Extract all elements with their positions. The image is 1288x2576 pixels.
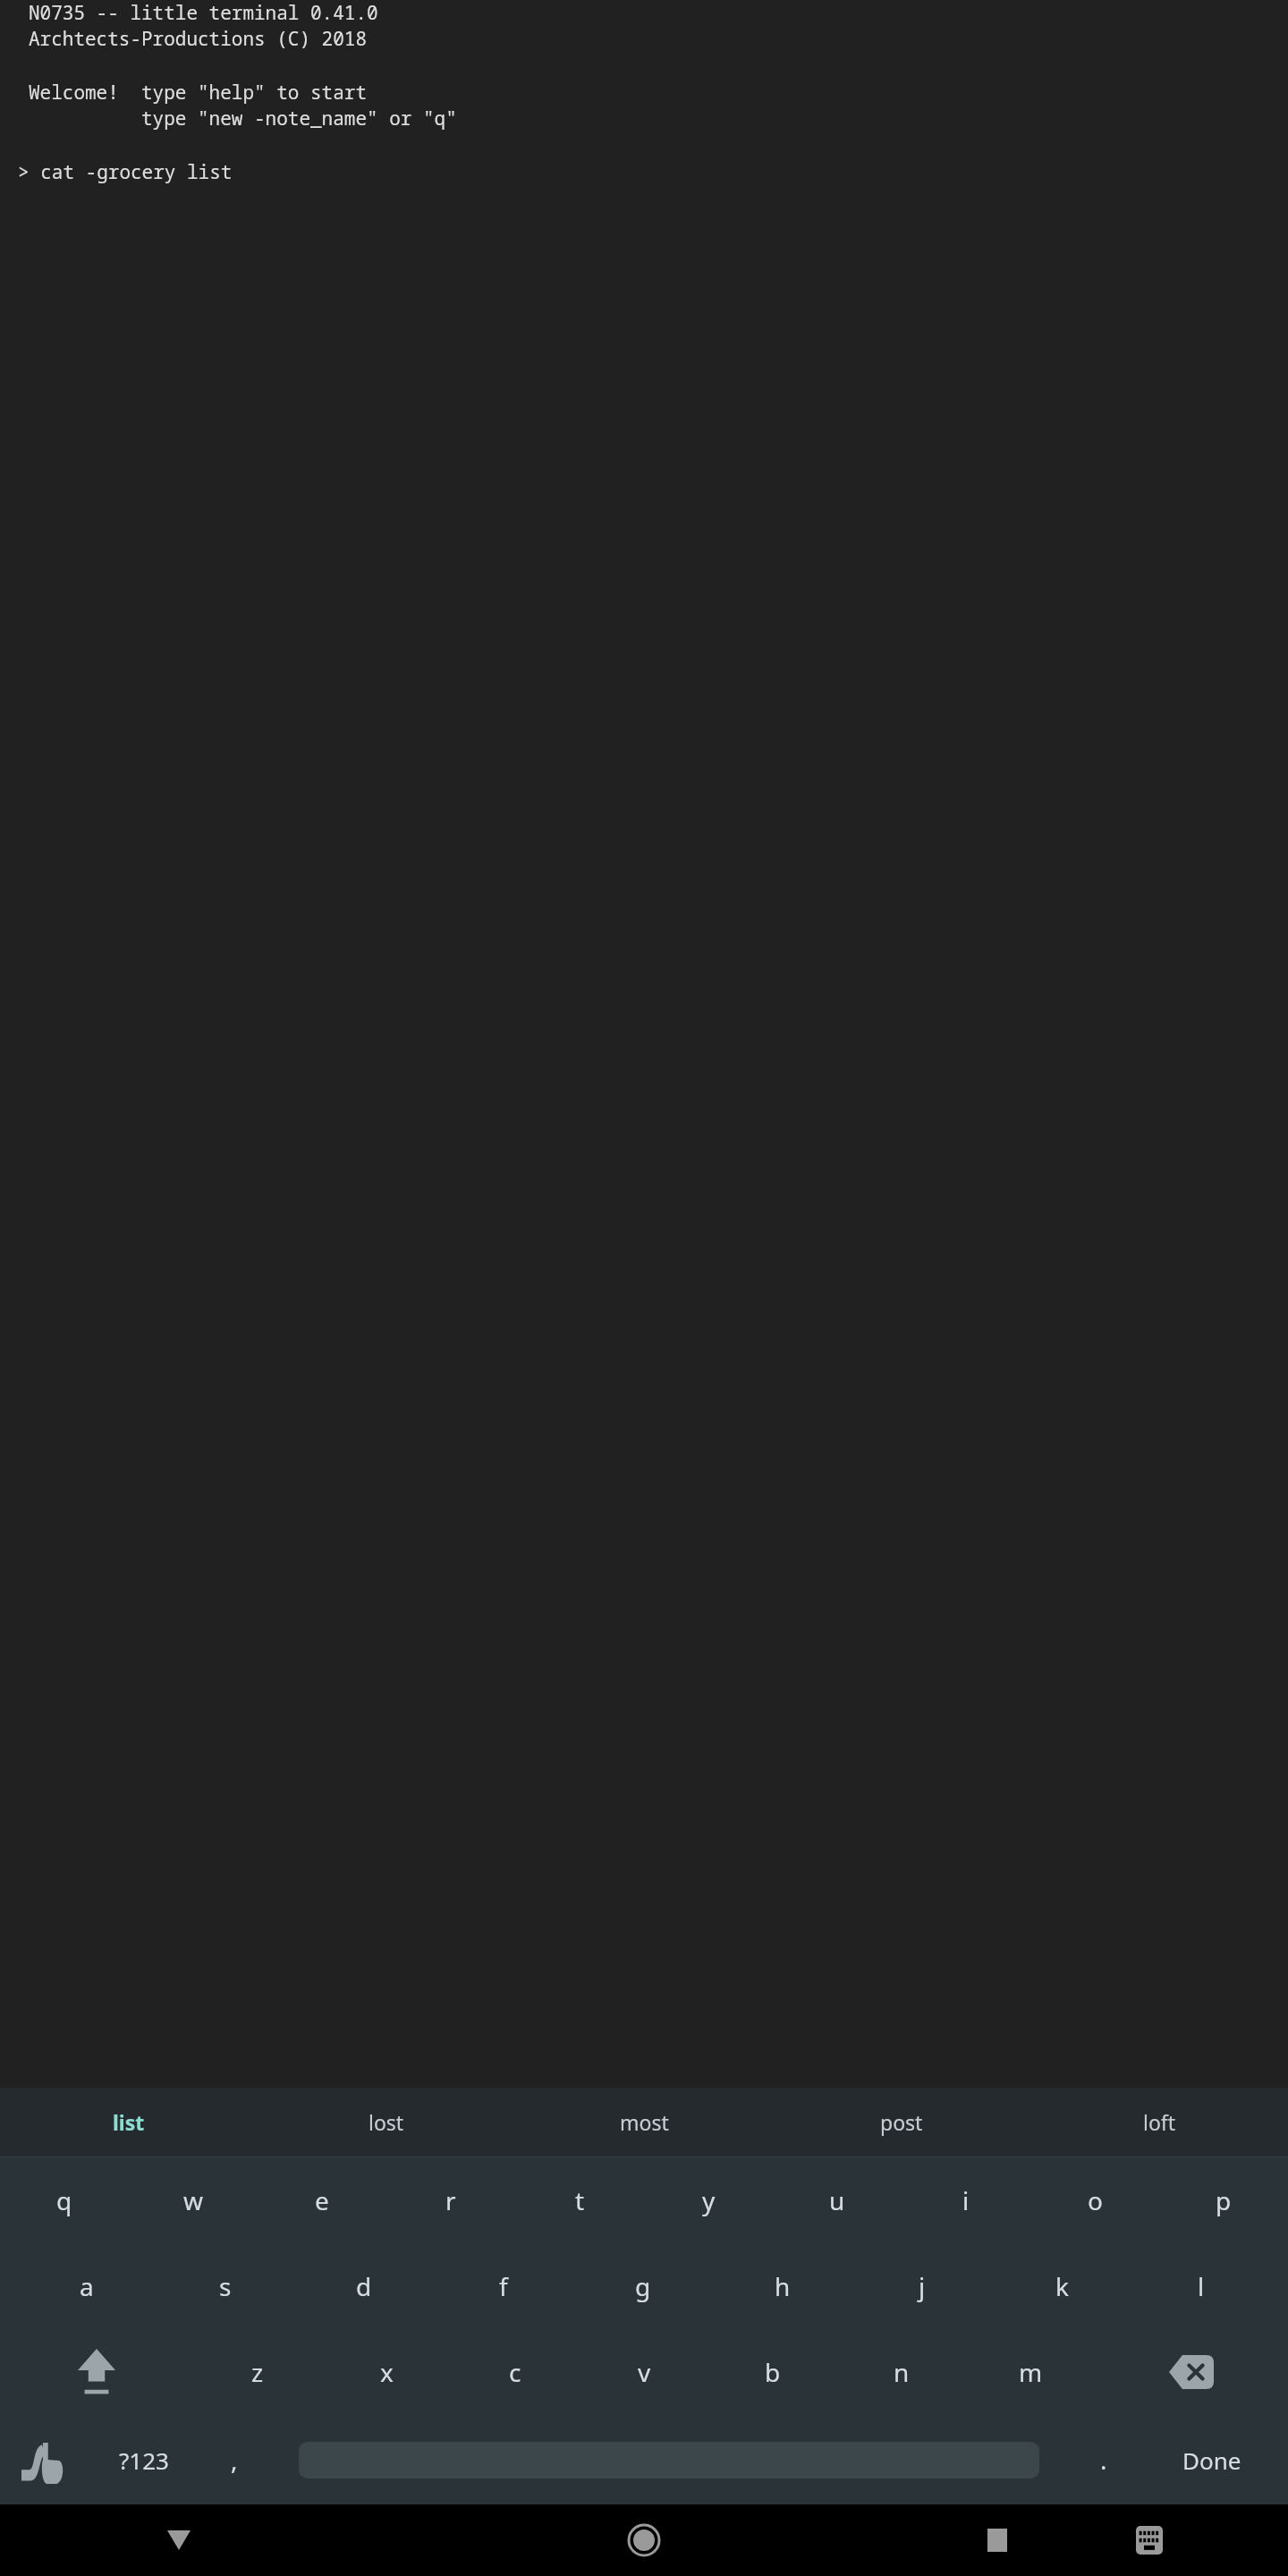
button[interactable]: g [573, 2243, 713, 2329]
staticText: s [219, 2269, 232, 2303]
staticText: Welcome! type "help" to start [29, 80, 367, 106]
staticText: f [499, 2269, 508, 2303]
button[interactable]: e [258, 2157, 386, 2243]
button[interactable]: most [515, 2088, 773, 2157]
button[interactable]: Done [1136, 2415, 1288, 2504]
staticText: t [575, 2183, 585, 2217]
button[interactable]: p [1159, 2157, 1288, 2243]
staticText: y [702, 2183, 716, 2217]
button[interactable]: z [193, 2329, 322, 2415]
button[interactable]: l [1131, 2243, 1271, 2329]
staticText: Archtects-Productions (C) 2018 [29, 26, 367, 52]
button[interactable]: v [580, 2329, 708, 2415]
staticText: . [1100, 2443, 1107, 2477]
staticText: c [509, 2355, 521, 2389]
staticText: , [231, 2443, 238, 2477]
button[interactable]: ?123 [86, 2415, 202, 2504]
button[interactable]: y [644, 2157, 773, 2243]
staticText: > cat -grocery list [18, 159, 233, 185]
staticText: i [962, 2183, 970, 2217]
button[interactable]: Switch keyboard [1082, 2504, 1216, 2576]
button[interactable]: f [434, 2243, 573, 2329]
staticText: lost [369, 2108, 404, 2136]
staticText: b [765, 2355, 781, 2389]
staticText: a [80, 2269, 94, 2303]
staticText: z [251, 2355, 264, 2389]
staticText: m [1019, 2355, 1043, 2389]
staticText: Done [1182, 2445, 1241, 2476]
staticText: r [445, 2183, 456, 2217]
button[interactable]: n [837, 2329, 966, 2415]
button[interactable]: m [966, 2329, 1095, 2415]
button[interactable]: b [708, 2329, 837, 2415]
button[interactable]: i [902, 2157, 1030, 2243]
button[interactable]: Backspace [1095, 2329, 1288, 2415]
staticText: ?123 [119, 2445, 169, 2476]
button[interactable]: , [202, 2415, 267, 2504]
staticText: x [380, 2355, 394, 2389]
button[interactable]: Space [267, 2415, 1072, 2504]
button[interactable]: k [992, 2243, 1131, 2329]
button[interactable]: u [773, 2157, 902, 2243]
button[interactable]: post [773, 2088, 1030, 2157]
staticText: n [894, 2355, 910, 2389]
button[interactable]: N0735 -- little terminal 0.41.0 [0, 0, 1288, 2088]
button[interactable]: x [322, 2329, 451, 2415]
staticText: list [113, 2108, 145, 2136]
button[interactable]: . [1072, 2415, 1136, 2504]
button[interactable]: Shift [0, 2329, 193, 2415]
staticText: k [1055, 2269, 1069, 2303]
staticText: o [1088, 2183, 1103, 2217]
button[interactable]: d [294, 2243, 434, 2329]
staticText: h [775, 2269, 791, 2303]
button[interactable]: Back [98, 2504, 259, 2576]
staticText: v [638, 2355, 651, 2389]
button[interactable]: lost [258, 2088, 515, 2157]
staticText: N0735 -- little terminal 0.41.0 [29, 0, 378, 26]
button[interactable]: list [0, 2088, 258, 2157]
staticText: q [56, 2183, 72, 2217]
button[interactable]: loft [1030, 2088, 1288, 2157]
button[interactable]: t [515, 2157, 644, 2243]
button[interactable]: s [156, 2243, 294, 2329]
button[interactable]: r [386, 2157, 515, 2243]
staticText: loft [1143, 2108, 1176, 2136]
staticText: g [635, 2269, 651, 2303]
button[interactable]: Glide typing [0, 2415, 86, 2504]
staticText: l [1198, 2269, 1205, 2303]
button[interactable]: c [451, 2329, 580, 2415]
staticText: d [356, 2269, 372, 2303]
button[interactable]: a [17, 2243, 156, 2329]
button[interactable]: Home [563, 2504, 724, 2576]
staticText: type "new -note_name" or "q" [29, 106, 1288, 131]
button[interactable]: h [713, 2243, 852, 2329]
staticText: j [919, 2269, 926, 2303]
button[interactable]: j [852, 2243, 992, 2329]
button[interactable]: Recents [930, 2504, 1064, 2576]
staticText: post [880, 2108, 923, 2136]
staticText: p [1216, 2183, 1232, 2217]
button[interactable]: q [0, 2157, 129, 2243]
button[interactable]: w [129, 2157, 258, 2243]
staticText: e [315, 2183, 329, 2217]
staticText: w [183, 2183, 204, 2217]
staticText: u [829, 2183, 845, 2217]
staticText: most [620, 2108, 669, 2136]
button[interactable]: o [1030, 2157, 1159, 2243]
